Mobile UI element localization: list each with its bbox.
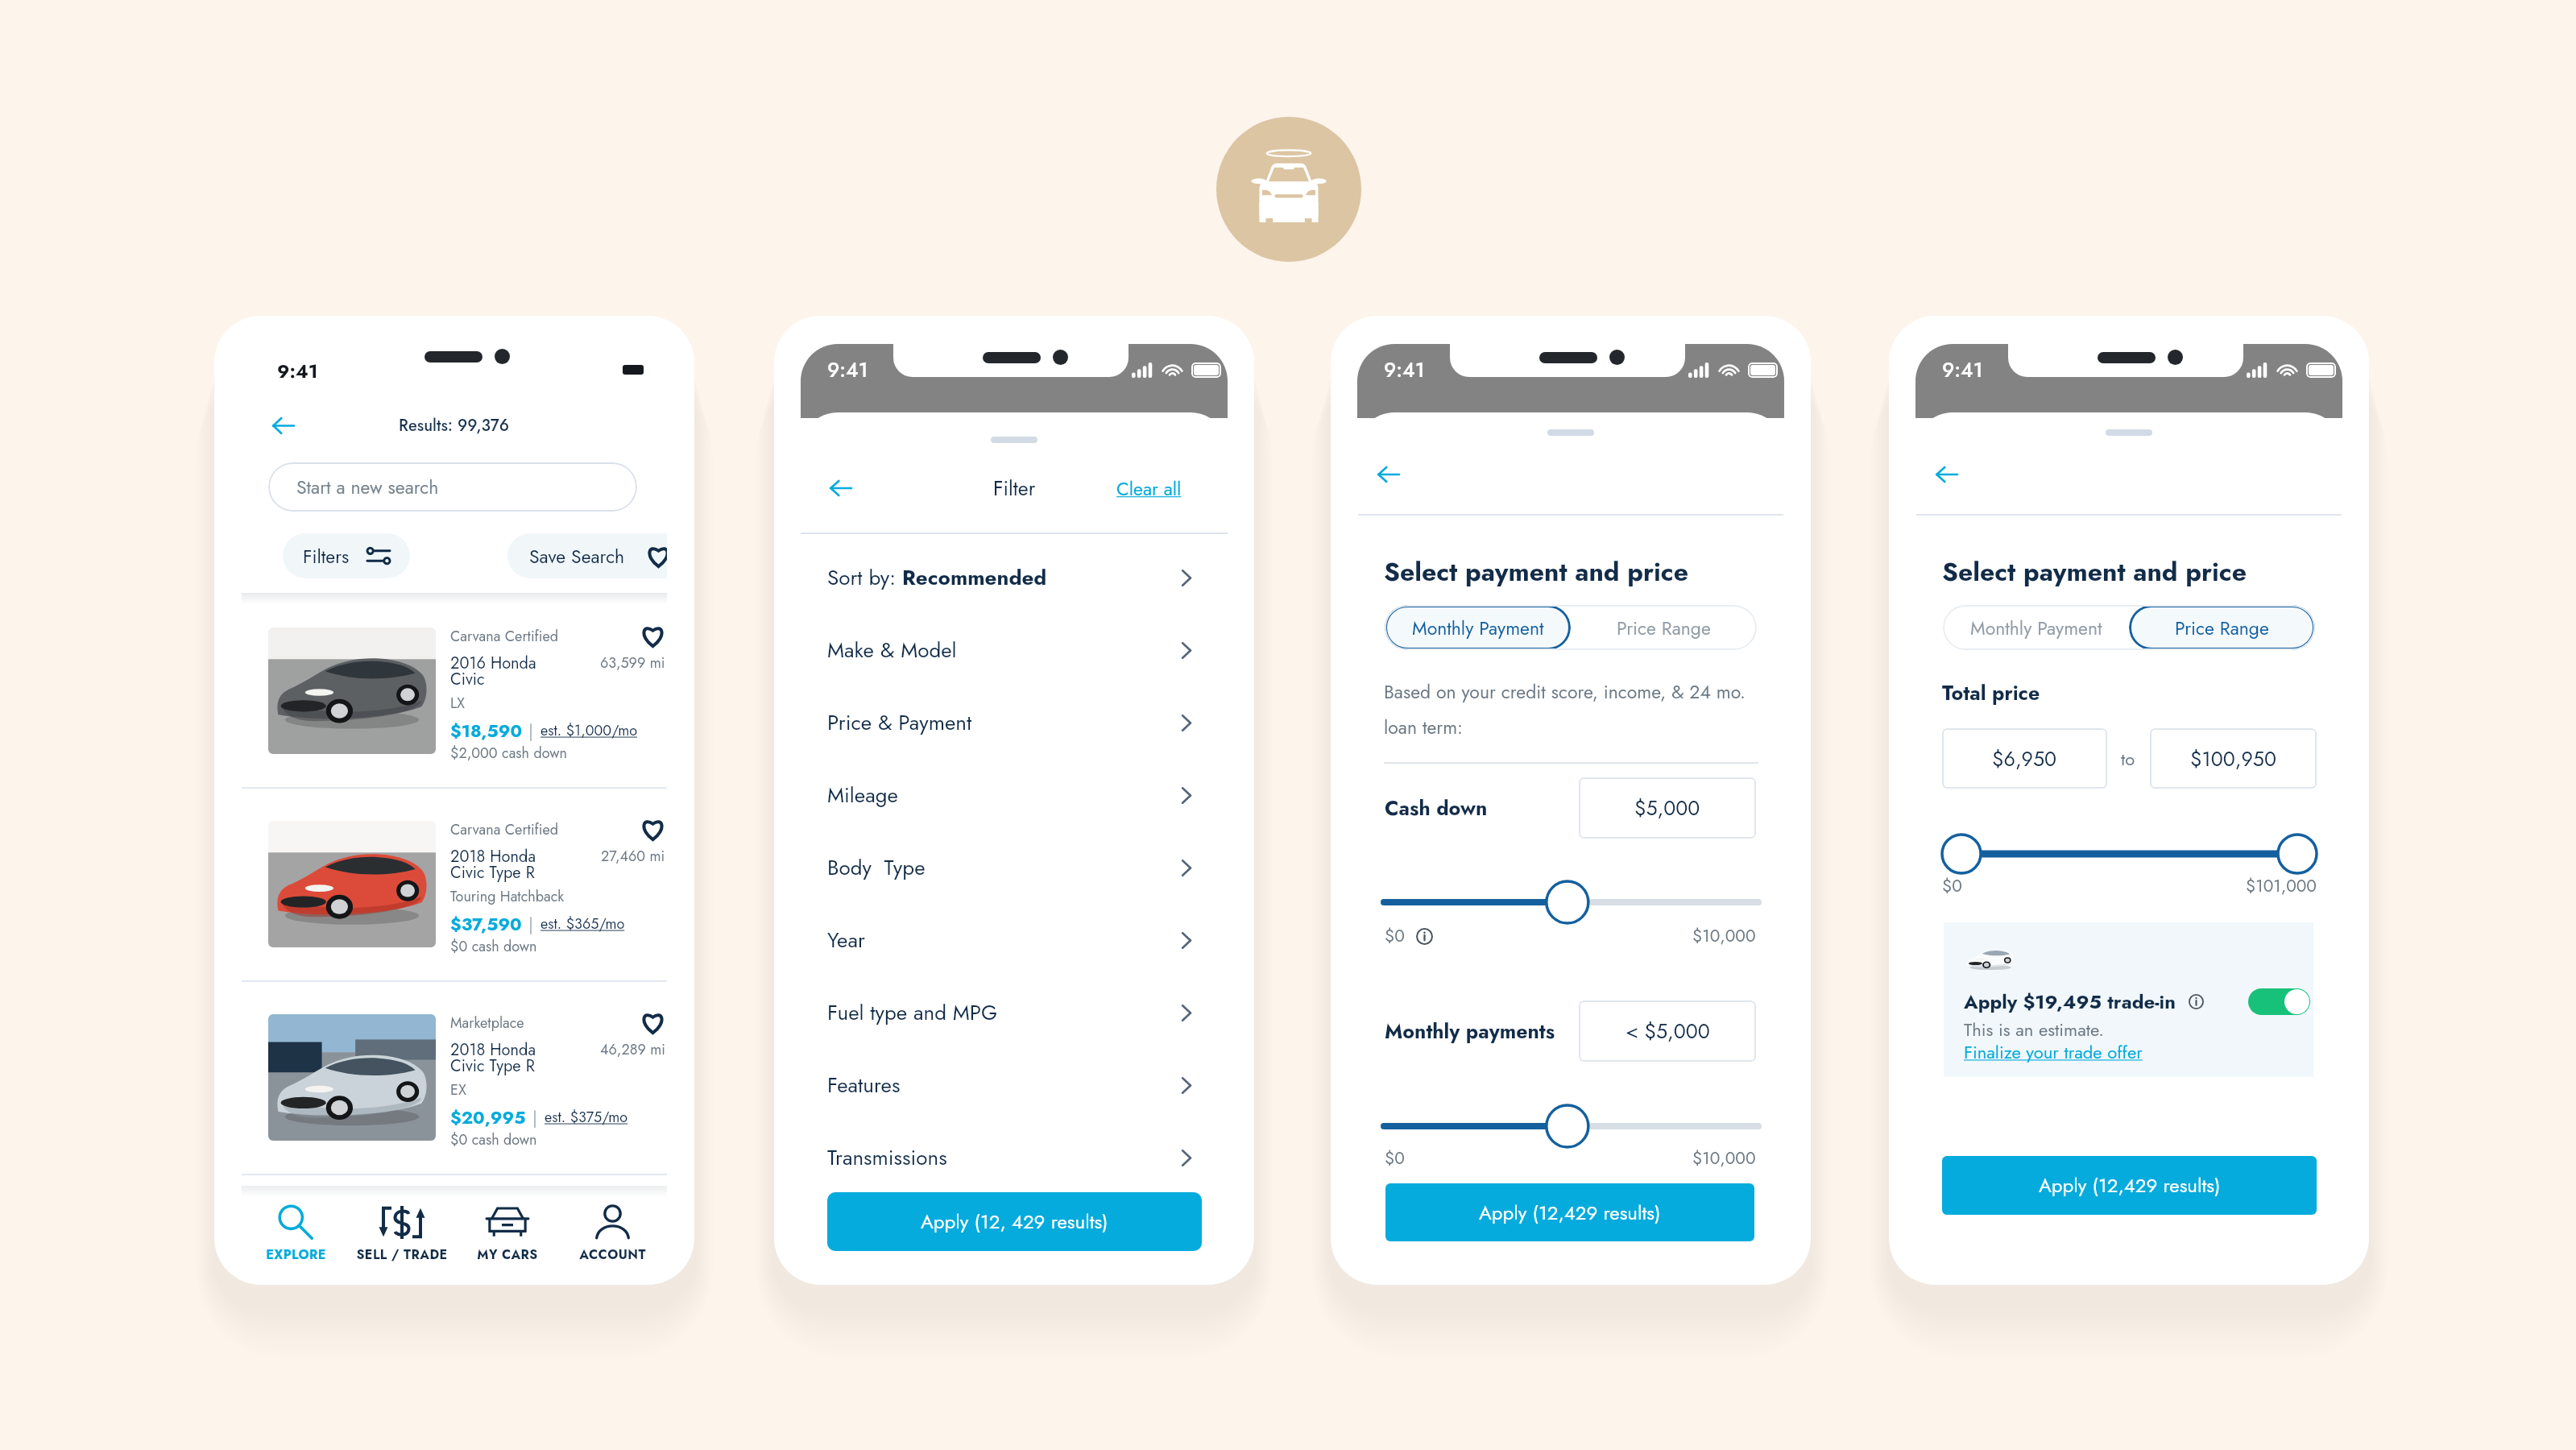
button[interactable]: EXPLORE xyxy=(242,1202,349,1274)
button[interactable]: $5,000 xyxy=(1579,777,1756,839)
button[interactable]: Price Range xyxy=(1571,605,1757,650)
staticText: Civic xyxy=(450,668,485,691)
button[interactable]: Clear all xyxy=(1080,472,1182,504)
staticText: LX xyxy=(450,693,466,714)
staticText: $37,590 xyxy=(450,911,522,937)
staticText: Touring Hatchback xyxy=(450,886,565,907)
staticText: $5,000 xyxy=(1634,793,1700,822)
button[interactable]: Apply (12, 429 results) xyxy=(827,1192,1202,1251)
staticText: Features xyxy=(827,1070,901,1100)
button[interactable]: Finalize your trade offer xyxy=(1964,1038,2143,1067)
staticText: 2018 Honda xyxy=(450,845,536,868)
staticText: Civic Type R xyxy=(450,1054,535,1078)
staticText: Total price xyxy=(1942,678,2040,707)
staticText: Recommended xyxy=(902,562,1047,593)
button[interactable]: Marketplace xyxy=(450,1008,665,1153)
staticText: Monthly Payment xyxy=(1970,615,2102,641)
button[interactable]: Year xyxy=(827,904,1192,976)
staticText: 2016 Honda xyxy=(450,652,536,675)
staticText: Apply (12,429 results) xyxy=(1479,1199,1661,1227)
staticText: est. $1,000/mo xyxy=(540,720,638,741)
staticText: $0 cash down xyxy=(450,1129,537,1150)
button[interactable]: ACCOUNT xyxy=(560,1202,665,1274)
staticText: Price Range xyxy=(2175,615,2269,641)
button[interactable]: Monthly Payment xyxy=(1385,605,1571,650)
staticText: EXPLORE xyxy=(266,1245,326,1264)
staticText: Select payment and price xyxy=(1942,553,2247,590)
staticText: Select payment and price xyxy=(1384,553,1689,590)
staticText: This is an estimate. xyxy=(1964,1017,2104,1042)
staticText: Mileage xyxy=(827,780,898,810)
staticText: Year xyxy=(827,925,865,955)
button[interactable]: Mileage xyxy=(827,759,1192,831)
button[interactable]: SELL / TRADE xyxy=(349,1202,454,1274)
button[interactable]: Apply (12,429 results) xyxy=(1942,1156,2317,1215)
staticText: $18,590 xyxy=(450,718,522,744)
button[interactable]: Transmissions xyxy=(827,1121,1192,1194)
staticText: est. $365/mo xyxy=(540,913,625,934)
button[interactable]: < $5,000 xyxy=(1579,1000,1756,1062)
staticText: 9:41 xyxy=(1942,355,1983,384)
staticText: to xyxy=(2121,746,2135,772)
button[interactable]: Monthly Payment xyxy=(1943,605,2129,650)
staticText: Clear all xyxy=(1116,475,1182,502)
staticText: $0 xyxy=(1385,924,1405,948)
staticText: | xyxy=(528,718,534,744)
staticText: Transmissions xyxy=(827,1142,947,1173)
button[interactable]: Carvana Certified xyxy=(450,814,665,959)
staticText: $101,000 xyxy=(2246,874,2317,898)
staticText: $0 xyxy=(1385,1146,1405,1170)
button[interactable]: Apply (12,429 results) xyxy=(1385,1183,1754,1241)
button[interactable]: Make & Model xyxy=(827,614,1192,686)
button[interactable]: Save Search xyxy=(507,533,667,578)
button[interactable]: Price Range xyxy=(2129,605,2315,650)
staticText: Monthly payments xyxy=(1385,1017,1555,1046)
staticText: $10,000 xyxy=(1692,1146,1756,1170)
staticText: $0 cash down xyxy=(450,936,537,957)
staticText: ACCOUNT xyxy=(579,1245,646,1264)
staticText: $100,950 xyxy=(2190,744,2276,773)
button[interactable]: Sort by: xyxy=(827,541,1192,614)
staticText: 9:41 xyxy=(827,355,868,384)
staticText: Apply (12,429 results) xyxy=(2039,1171,2221,1199)
button[interactable]: Toggle trade-in xyxy=(2248,988,2310,1015)
staticText: 9:41 xyxy=(1384,355,1425,384)
staticText: Fuel type and MPG xyxy=(827,997,998,1028)
staticText: $10,000 xyxy=(1692,924,1756,948)
button[interactable]: Features xyxy=(827,1049,1192,1121)
staticText: Monthly Payment xyxy=(1412,615,1544,641)
button[interactable]: Fuel type and MPG xyxy=(827,976,1192,1049)
staticText: MY CARS xyxy=(477,1245,538,1264)
staticText: $6,950 xyxy=(1992,744,2057,773)
staticText: Body Type xyxy=(827,852,926,883)
staticText: Apply (12, 429 results) xyxy=(921,1208,1108,1236)
staticText: Start a new search xyxy=(296,474,439,500)
staticText: 9:41 xyxy=(277,358,318,384)
staticText: Filter xyxy=(993,474,1036,503)
staticText: Marketplace xyxy=(450,1013,524,1034)
button[interactable]: $100,950 xyxy=(2150,728,2317,789)
button[interactable]: Price & Payment xyxy=(827,686,1192,759)
staticText: Carvana Certified xyxy=(450,626,558,647)
button[interactable]: Back xyxy=(262,409,304,441)
staticText: Results: 99,376 xyxy=(399,414,510,437)
staticText: Apply $19,495 trade-in xyxy=(1964,988,2176,1016)
button[interactable]: Carvana Certified xyxy=(450,621,665,766)
staticText: Finalize your trade offer xyxy=(1964,1039,2143,1065)
staticText: Make & Model xyxy=(827,635,957,665)
button[interactable]: Back xyxy=(1925,458,1967,491)
staticText: < $5,000 xyxy=(1626,1017,1710,1046)
staticText: SELL / TRADE xyxy=(356,1245,448,1264)
staticText: Filters xyxy=(303,543,350,570)
button[interactable]: Start a new search xyxy=(268,462,637,512)
button[interactable]: Filters xyxy=(283,533,410,578)
staticText: | xyxy=(528,911,534,937)
staticText: $0 xyxy=(1942,874,1962,898)
staticText: Price Range xyxy=(1617,615,1711,641)
button[interactable]: Back xyxy=(819,472,861,504)
button[interactable]: $6,950 xyxy=(1942,728,2107,789)
button[interactable]: Body Type xyxy=(827,831,1192,904)
button[interactable]: Back xyxy=(1367,458,1409,491)
staticText: 63,599 mi xyxy=(600,652,665,673)
button[interactable]: MY CARS xyxy=(454,1202,560,1274)
